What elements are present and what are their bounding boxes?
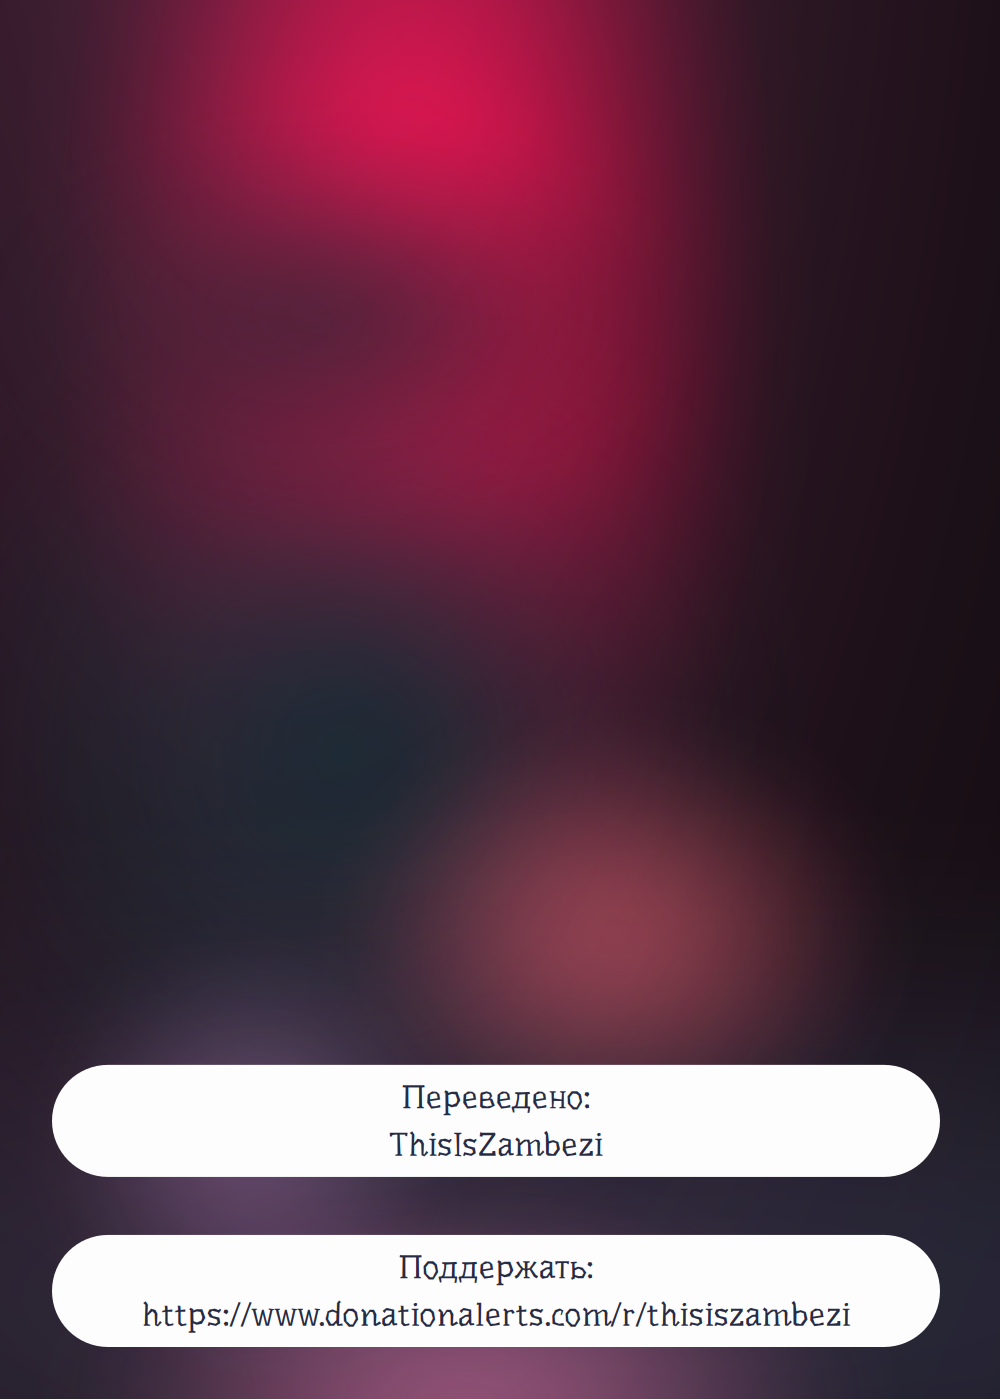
- button[interactable]: Переведено:: [0, 1065, 1000, 1177]
- staticText: https://www.donationalerts.com/r/thisisz…: [141, 1295, 850, 1334]
- staticText: Переведено:: [401, 1078, 590, 1116]
- button[interactable]: Поддержать:: [0, 1235, 1000, 1347]
- staticText: ThisIsZambezi: [389, 1125, 603, 1164]
- staticText: Поддержать:: [398, 1248, 593, 1286]
